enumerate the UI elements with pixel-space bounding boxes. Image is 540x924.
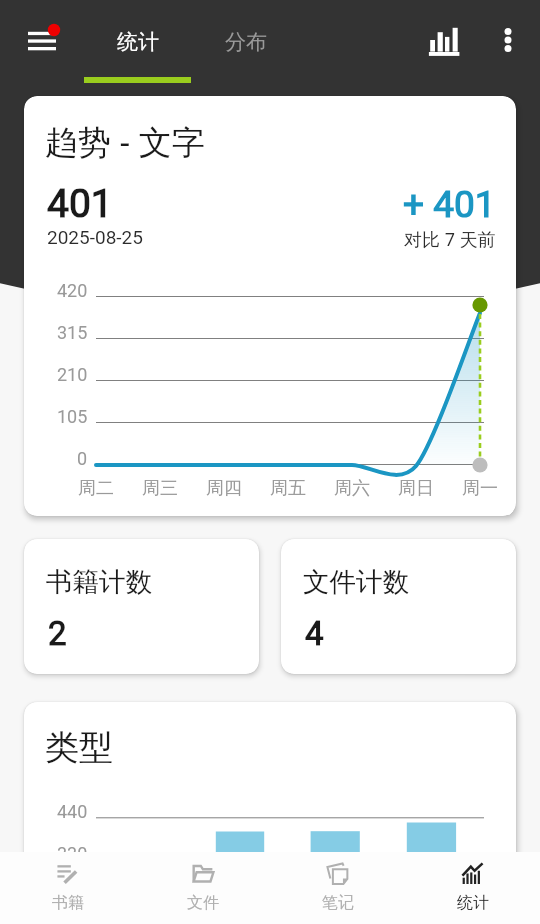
staticText: 315: [57, 322, 88, 343]
staticText: 周二: [78, 477, 114, 500]
staticText: 书籍: [52, 893, 84, 913]
staticText: 周四: [206, 477, 242, 500]
staticText: 趋势 - 文字: [45, 119, 205, 164]
staticText: 440: [57, 801, 88, 822]
button[interactable]: 趋势 - 文字: [24, 96, 516, 516]
staticText: 420: [57, 280, 88, 301]
staticText: 统计: [457, 893, 489, 913]
button[interactable]: 书籍计数: [24, 539, 259, 674]
button[interactable]: More options: [482, 14, 534, 66]
staticText: 文件计数: [303, 565, 409, 598]
staticText: 统计: [117, 29, 159, 55]
staticText: 周五: [270, 477, 306, 500]
staticText: 0: [77, 448, 88, 469]
staticText: 4: [305, 614, 324, 653]
staticText: 2025-08-25: [47, 226, 143, 248]
button[interactable]: 文件计数: [281, 539, 516, 674]
staticText: 周三: [142, 477, 178, 500]
staticText: 401: [47, 181, 113, 227]
staticText: 周日: [398, 477, 434, 500]
button[interactable]: 文件: [135, 852, 270, 924]
staticText: 书籍计数: [46, 565, 152, 598]
button[interactable]: Chart: [419, 14, 471, 66]
staticText: 对比 7 天前: [404, 227, 496, 252]
staticText: 分布: [225, 29, 267, 55]
staticText: + 401: [403, 183, 496, 226]
button[interactable]: Menu: [14, 14, 70, 70]
button[interactable]: 书籍: [0, 852, 135, 924]
staticText: 周六: [334, 477, 370, 500]
button[interactable]: 分布: [191, 3, 301, 81]
button[interactable]: 笔记: [270, 852, 405, 924]
staticText: 330: [57, 843, 88, 864]
staticText: 2: [48, 614, 67, 653]
staticText: 210: [57, 364, 88, 385]
staticText: 文件: [187, 893, 219, 913]
staticText: 笔记: [322, 893, 354, 913]
staticText: 周一: [462, 477, 498, 500]
button[interactable]: 统计: [405, 852, 540, 924]
button[interactable]: 统计: [83, 3, 193, 81]
button[interactable]: 类型: [24, 702, 516, 924]
staticText: 类型: [45, 726, 113, 769]
staticText: 105: [57, 406, 88, 427]
